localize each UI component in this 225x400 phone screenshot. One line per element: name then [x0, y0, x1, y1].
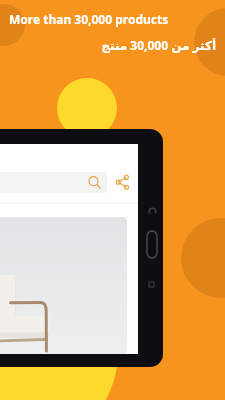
staticText: أكثر من 30,000 منتج: [0, 37, 216, 53]
button[interactable]: Share: [115, 175, 130, 190]
button[interactable]: Search: [0, 172, 107, 193]
button[interactable]: Recent apps: [149, 282, 154, 287]
button[interactable]: Back: [146, 205, 159, 218]
button[interactable]: Home: [147, 231, 157, 258]
staticText: More than 30,000 products: [9, 11, 169, 27]
